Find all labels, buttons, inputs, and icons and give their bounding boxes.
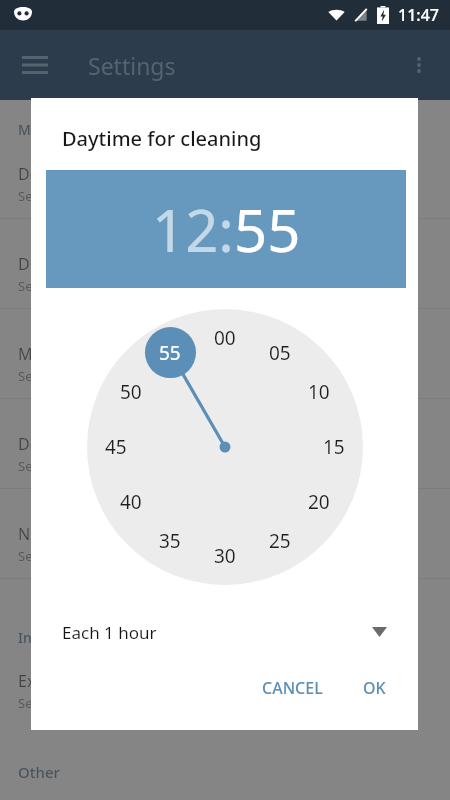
staticText: 55 xyxy=(234,190,301,269)
staticText: 10 xyxy=(308,379,330,405)
staticText: Delay of start xyxy=(18,163,119,185)
staticText: CANCEL xyxy=(262,677,323,699)
staticText: 20 xyxy=(308,489,330,515)
staticText: Other xyxy=(18,762,60,782)
staticText: Export xyxy=(18,670,68,692)
staticText: 15 xyxy=(323,434,345,460)
button[interactable]: Open navigation drawer xyxy=(12,42,58,88)
staticText: Setting value xyxy=(18,547,98,565)
staticText: 40 xyxy=(120,489,142,515)
staticText: 30 xyxy=(214,543,236,569)
staticText: Each 1 hour xyxy=(62,621,157,644)
staticText: Setting value xyxy=(18,367,98,385)
button[interactable]: CANCEL xyxy=(252,668,333,708)
staticText: Integration xyxy=(18,628,94,647)
staticText: Notifications xyxy=(18,523,114,545)
staticText: Delay time xyxy=(18,433,99,455)
staticText: 00 xyxy=(214,325,236,351)
staticText: Mode xyxy=(18,343,62,365)
staticText: Settings xyxy=(88,50,176,81)
staticText: 50 xyxy=(120,379,142,405)
staticText: Setting value xyxy=(18,187,98,205)
button[interactable]: 00 xyxy=(87,309,363,585)
staticText: Setting value xyxy=(18,457,98,475)
button[interactable]: 55 xyxy=(234,190,301,269)
button[interactable]: OK xyxy=(353,668,396,708)
staticText: OK xyxy=(363,677,386,699)
button[interactable]: More options xyxy=(396,42,442,88)
staticText: 35 xyxy=(159,528,181,554)
staticText: Duration xyxy=(18,253,85,275)
staticText: 25 xyxy=(269,528,291,554)
staticText: 12: xyxy=(152,190,234,269)
staticText: Main xyxy=(18,120,52,139)
button[interactable]: Each 1 hour xyxy=(62,608,387,656)
staticText: 45 xyxy=(105,434,127,460)
staticText: Setting value xyxy=(18,277,98,295)
button[interactable]: 12: xyxy=(152,190,234,269)
staticText: 05 xyxy=(269,340,291,366)
staticText: Daytime for cleaning xyxy=(62,125,262,152)
staticText: 11:47 xyxy=(398,4,439,26)
staticText: Setting value xyxy=(18,694,98,712)
staticText: 55 xyxy=(159,340,181,366)
